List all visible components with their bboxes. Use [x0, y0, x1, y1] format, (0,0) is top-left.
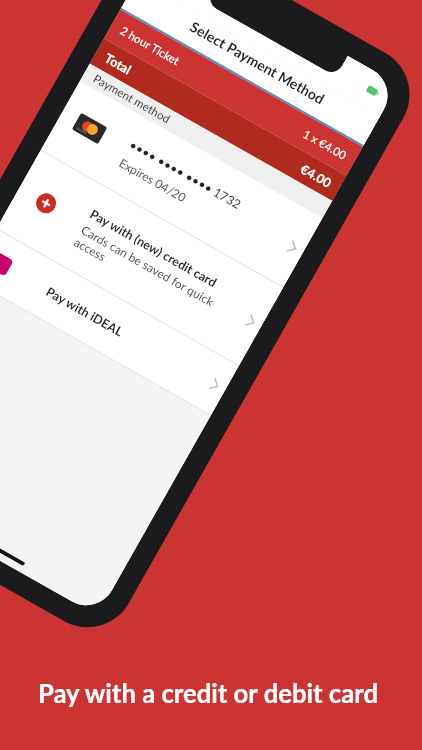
staticText: Pay with a credit or debit card: [0, 678, 419, 709]
other: Open: [245, 314, 257, 328]
staticText: Pay with (new) credit card: [87, 207, 220, 291]
staticText: Cards can be saved for quick access: [72, 222, 238, 333]
button[interactable]: Pay with iDEAL: [0, 229, 239, 415]
staticText: €4.00: [298, 161, 334, 190]
staticText: Expires 04/20: [117, 155, 189, 204]
staticText: •••• •••• •••• 1732: [127, 137, 244, 212]
button[interactable]: •••• •••• •••• 1732: [41, 81, 322, 287]
staticText: Payment method: [91, 72, 173, 127]
other: Open: [287, 240, 299, 254]
staticText: Total: [103, 50, 134, 77]
staticText: 2 hour Ticket: [118, 24, 182, 68]
other: Open: [209, 378, 221, 392]
button[interactable]: Pay with (new) credit card: [0, 151, 283, 365]
button[interactable]: Select Payment Method: [121, 0, 380, 145]
staticText: Pay with iDEAL: [43, 284, 126, 339]
staticText: Select Payment Method: [187, 18, 328, 107]
staticText: 1 x €4.00: [301, 127, 349, 163]
other: Battery: [366, 85, 380, 97]
